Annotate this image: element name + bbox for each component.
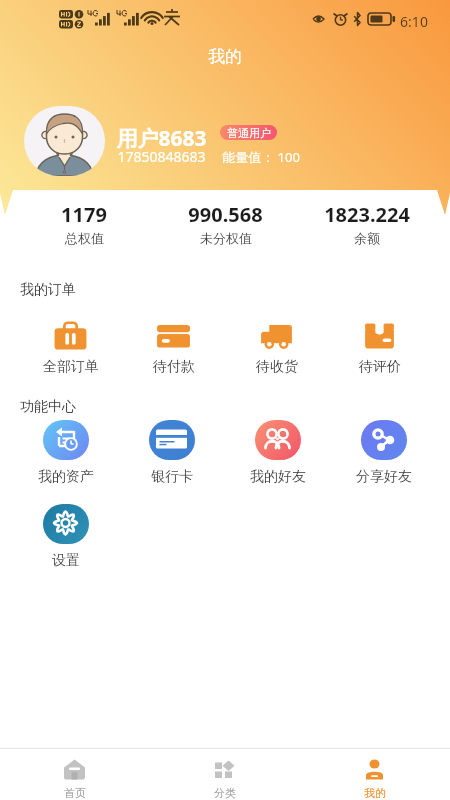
staticText: 分类: [214, 786, 236, 800]
staticText: 我的: [364, 786, 386, 800]
button[interactable]: 我的: [300, 749, 450, 800]
button[interactable]: 我的好友: [225, 416, 331, 486]
staticText: 分享好友: [356, 468, 412, 486]
staticText: 我的订单: [20, 281, 76, 299]
button[interactable]: 待收货: [225, 299, 328, 380]
staticText: 总权值: [65, 230, 104, 246]
staticText: 用户8683: [116, 124, 207, 153]
staticText: 我的资产: [38, 468, 94, 486]
staticText: 首页: [64, 786, 86, 800]
staticText: 普通用户: [227, 126, 271, 140]
staticText: 990.568: [188, 201, 263, 228]
staticText: 余额: [354, 230, 380, 246]
button[interactable]: 待付款: [122, 299, 225, 380]
staticText: 能量值： 100: [222, 148, 300, 166]
button[interactable]: 我的资产: [13, 416, 119, 486]
button[interactable]: 首页: [0, 749, 150, 800]
button[interactable]: 设置: [13, 500, 119, 570]
staticText: 我的: [208, 46, 242, 67]
button[interactable]: Avatar: [24, 106, 105, 176]
staticText: 6:10: [400, 12, 428, 31]
staticText: 待付款: [153, 358, 195, 376]
button[interactable]: 全部订单: [19, 299, 122, 380]
button[interactable]: 分类: [150, 749, 300, 800]
staticText: 待收货: [256, 358, 298, 376]
staticText: 我的好友: [250, 468, 306, 486]
staticText: 功能中心: [20, 398, 76, 416]
staticText: 待评价: [359, 358, 401, 376]
staticText: 设置: [52, 552, 80, 570]
button[interactable]: 待评价: [328, 299, 431, 380]
button[interactable]: 银行卡: [119, 416, 225, 486]
staticText: 银行卡: [151, 468, 193, 486]
staticText: 未分权值: [200, 230, 252, 246]
staticText: 1179: [61, 201, 107, 228]
button[interactable]: 分享好友: [331, 416, 437, 486]
staticText: 全部订单: [43, 358, 99, 376]
staticText: 17850848683: [117, 147, 206, 166]
staticText: 1823.224: [324, 201, 410, 228]
